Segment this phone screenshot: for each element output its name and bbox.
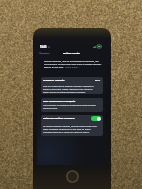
staticText: Maximum Capacity bbox=[43, 79, 65, 82]
staticText: Peak Performance Capability bbox=[43, 100, 76, 103]
staticText: daily charging routine so it can wait to… bbox=[43, 128, 91, 131]
staticText: 16:35 bbox=[40, 45, 47, 48]
staticText: Your battery is currently supporting nor… bbox=[43, 104, 96, 107]
staticText: charging past 80 % until you need to use… bbox=[43, 131, 90, 134]
staticText: This is a measure of battery capacity re… bbox=[43, 85, 94, 88]
staticText: consumable components that have a limite… bbox=[44, 63, 102, 66]
staticText: Effects at this age. bbox=[44, 66, 64, 69]
staticText: Phone batteries, like all rechargeable b… bbox=[44, 60, 99, 63]
button[interactable]: Maximum Capacity bbox=[41, 77, 103, 94]
button[interactable]: Home bbox=[66, 170, 79, 183]
staticText: To reduce battery ageing, iPhone learns … bbox=[43, 125, 98, 128]
staticText: Optimized Battery Charging bbox=[43, 117, 75, 120]
staticText: charging past 80 % until you need to use… bbox=[43, 131, 90, 134]
staticText: Effects at this age. bbox=[44, 66, 64, 69]
staticText: Learn more... bbox=[65, 66, 80, 69]
staticText: To reduce battery ageing, iPhone learns … bbox=[43, 125, 98, 128]
staticText: 82 % bbox=[95, 79, 101, 82]
staticText: Your battery is currently supporting nor… bbox=[43, 104, 96, 107]
staticText: 16:35 bbox=[40, 45, 47, 48]
staticText: performance. bbox=[43, 107, 58, 110]
staticText: performance. bbox=[43, 107, 58, 110]
staticText: Battery bbox=[41, 51, 50, 54]
button[interactable]: Peak Performance Capability bbox=[41, 98, 103, 112]
staticText: when it was new. Lower capacity may resu… bbox=[43, 88, 93, 91]
staticText: This is a measure of battery capacity re… bbox=[43, 85, 94, 88]
staticText: 16:35 bbox=[40, 45, 47, 48]
staticText: Battery bbox=[41, 51, 50, 54]
staticText: Battery Health bbox=[63, 51, 81, 54]
staticText: This is a measure of battery capacity re… bbox=[43, 85, 94, 88]
staticText: Battery Health bbox=[63, 51, 81, 54]
staticText: 82 % bbox=[95, 79, 101, 82]
staticText: Your battery is currently supporting nor… bbox=[43, 104, 96, 107]
staticText: Peak Performance Capability bbox=[43, 100, 76, 103]
staticText: Phone batteries, like all rechargeable b… bbox=[44, 60, 99, 63]
staticText: 82 % bbox=[95, 79, 101, 82]
staticText: Phone batteries, like all rechargeable b… bbox=[44, 60, 99, 63]
staticText: To reduce battery ageing, iPhone learns … bbox=[43, 125, 98, 128]
staticText: Maximum Capacity bbox=[43, 79, 65, 82]
staticText: fewer hours of usage between charges. bbox=[43, 91, 86, 93]
staticText: Optimized Battery Charging bbox=[43, 117, 75, 120]
staticText: Learn more... bbox=[65, 66, 80, 69]
staticText: when it was new. Lower capacity may resu… bbox=[43, 88, 93, 91]
staticText: performance. bbox=[43, 107, 58, 110]
staticText: Learn more... bbox=[65, 66, 80, 69]
staticText: Battery bbox=[41, 51, 50, 54]
button[interactable]: Optimized Battery Charging bbox=[41, 115, 103, 136]
staticText: Optimized Battery Charging bbox=[43, 117, 75, 120]
staticText: fewer hours of usage between charges. bbox=[43, 91, 86, 93]
staticText: consumable components that have a limite… bbox=[44, 63, 102, 66]
staticText: consumable components that have a limite… bbox=[44, 63, 102, 66]
staticText: daily charging routine so it can wait to… bbox=[43, 128, 91, 131]
button[interactable]: Optimized Battery Charging toggle bbox=[91, 116, 101, 121]
staticText: Effects at this age. bbox=[44, 66, 64, 69]
staticText: when it was new. Lower capacity may resu… bbox=[43, 88, 93, 91]
staticText: Maximum Capacity bbox=[43, 79, 65, 82]
button[interactable]: Back to Battery bbox=[39, 51, 50, 54]
staticText: Battery Health bbox=[63, 51, 81, 54]
staticText: fewer hours of usage between charges. bbox=[43, 91, 86, 93]
staticText: Peak Performance Capability bbox=[43, 100, 76, 103]
staticText: daily charging routine so it can wait to… bbox=[43, 128, 91, 131]
staticText: charging past 80 % until you need to use… bbox=[43, 131, 90, 134]
